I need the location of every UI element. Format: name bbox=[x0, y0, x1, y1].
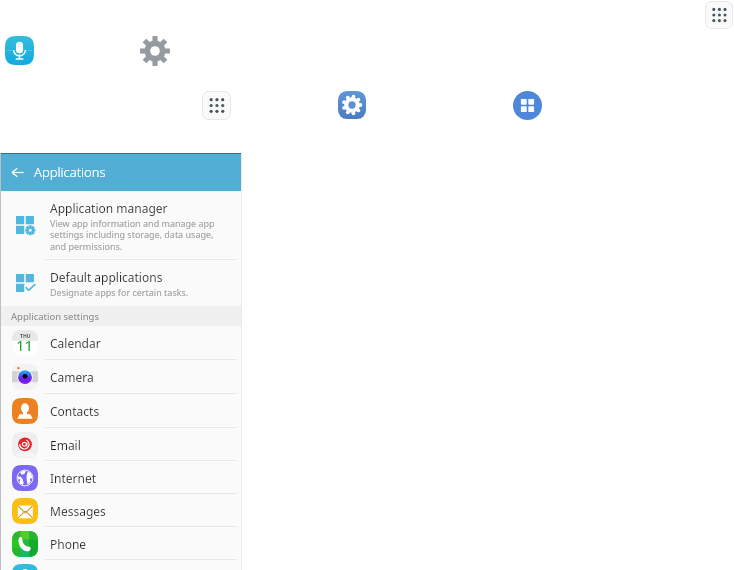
button[interactable]: Settings bbox=[338, 91, 366, 119]
staticText: Phone bbox=[50, 536, 87, 552]
staticText: Application settings bbox=[11, 310, 99, 323]
staticText: THU bbox=[20, 333, 31, 340]
button[interactable]: Default applications bbox=[0, 260, 242, 306]
button[interactable]: Settings bbox=[140, 36, 170, 66]
button[interactable]: Apps bbox=[202, 91, 231, 120]
button[interactable]: Navigate up bbox=[0, 153, 34, 191]
button[interactable]: Internet bbox=[0, 461, 242, 494]
button[interactable]: All apps bbox=[513, 91, 542, 120]
staticText: Contacts bbox=[50, 403, 100, 419]
button[interactable]: Email bbox=[0, 428, 242, 461]
staticText: Applications bbox=[34, 163, 106, 181]
button[interactable]: Camera bbox=[0, 360, 242, 394]
button[interactable]: THU bbox=[0, 326, 242, 360]
staticText: View app information and manage app sett… bbox=[50, 217, 218, 253]
staticText: Email bbox=[50, 437, 81, 453]
button[interactable]: Application manager bbox=[0, 191, 242, 259]
button[interactable]: S Voice bbox=[0, 560, 242, 570]
staticText: Calendar bbox=[50, 335, 101, 351]
staticText: Designate apps for certain tasks. bbox=[50, 286, 189, 298]
staticText: Default applications bbox=[50, 269, 163, 285]
staticText: Messages bbox=[50, 503, 106, 519]
staticText: Camera bbox=[50, 369, 94, 385]
button[interactable]: Contacts bbox=[0, 394, 242, 428]
staticText: Application manager bbox=[50, 200, 168, 216]
button[interactable]: Phone bbox=[0, 527, 242, 560]
button[interactable]: Messages bbox=[0, 494, 242, 527]
staticText: Internet bbox=[50, 470, 97, 486]
staticText: 11 bbox=[16, 335, 34, 355]
button[interactable]: Apps bbox=[705, 1, 733, 29]
